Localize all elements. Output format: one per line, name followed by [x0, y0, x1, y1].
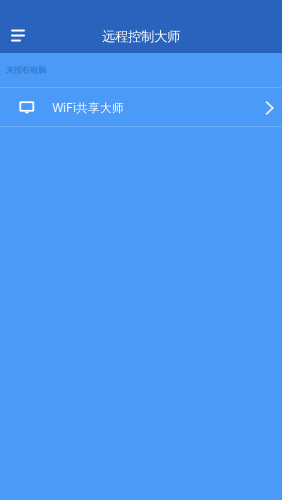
staticText: 远程控制大师	[102, 28, 180, 45]
staticText: WiFi共享大师	[52, 101, 124, 115]
button[interactable]: WiFi共享大师	[0, 88, 282, 126]
staticText: 未授权电脑	[6, 65, 46, 75]
button[interactable]: Menu	[0, 24, 39, 52]
